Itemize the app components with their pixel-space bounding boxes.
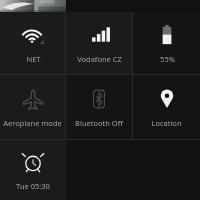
- staticText: Vodafone CZ: [77, 54, 122, 64]
- staticText: NET: [26, 54, 41, 64]
- staticText: Bluetooth Off: [75, 118, 123, 128]
- staticText: Location: [151, 118, 182, 128]
- staticText: 55%: [160, 54, 175, 64]
- staticText: Tue 05:30: [16, 181, 50, 191]
- staticText: Aeroplane mode: [3, 118, 62, 128]
- button[interactable]: Wi-Fi NET: [0, 12, 65, 74]
- button[interactable]: Battery 55 percent: [133, 12, 200, 74]
- button[interactable]: Alarm Tuesday 05:30: [0, 140, 66, 200]
- button[interactable]: Aeroplane mode off: [0, 75, 65, 139]
- button[interactable]: Mobile signal Vodafone CZ: [66, 12, 132, 74]
- button[interactable]: Location on: [133, 75, 200, 139]
- button[interactable]: Bluetooth off: [66, 75, 132, 139]
